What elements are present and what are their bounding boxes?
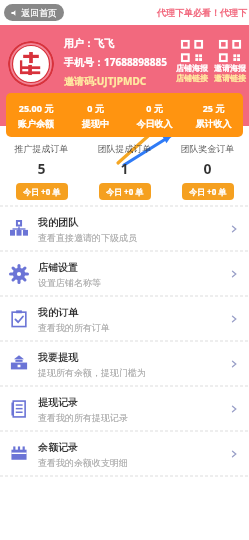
staticText: 查看我的所有订单 <box>38 322 110 333</box>
staticText: 我的订单 <box>38 306 78 319</box>
staticText: 用户：飞飞 <box>64 37 114 50</box>
staticText: 店铺设置 <box>38 261 78 274</box>
staticText: 邀请链接 <box>214 73 246 83</box>
button[interactable]: 我要提现 <box>0 342 249 386</box>
button[interactable]: 0 元 <box>66 102 125 129</box>
button[interactable]: 团队提成订单 <box>83 143 166 200</box>
staticText: 提现所有余额，提现门槛为 <box>38 367 146 378</box>
staticText: 设置店铺名称等 <box>38 277 101 288</box>
button[interactable]: 余额记录 <box>0 432 249 476</box>
staticText: 查看直接邀请的下级成员 <box>38 232 137 243</box>
staticText: 手机号：17688898885 <box>64 55 167 69</box>
staticText: 店铺海报 <box>176 63 208 73</box>
staticText: 我的团队 <box>38 216 78 229</box>
staticText: 团队提成订单 <box>83 143 166 154</box>
staticText: 邀请海报 <box>214 63 246 73</box>
button[interactable]: 店铺设置 <box>0 252 249 296</box>
staticText: 邀请码:UJTJPMDC <box>64 74 147 88</box>
staticText: 查看我的余额收支明细 <box>38 457 128 468</box>
button[interactable]: 我的订单 <box>0 297 249 341</box>
button[interactable]: 邀请海报 <box>214 41 246 83</box>
staticText: 代理下单必看！代理下 <box>157 7 247 18</box>
staticText: 累计收入 <box>184 118 243 129</box>
staticText: 我要提现 <box>38 351 78 364</box>
button[interactable]: 0 元 <box>125 102 184 129</box>
staticText: 余额记录 <box>38 441 78 454</box>
staticText: 查看我的所有提现记录 <box>38 412 128 423</box>
staticText: 团队奖金订单 <box>166 143 249 154</box>
staticText: 提现记录 <box>38 396 78 409</box>
button[interactable]: 25 元 <box>184 102 243 129</box>
staticText: 今日 +0 单 <box>23 186 61 197</box>
staticText: 今日 +0 单 <box>189 186 227 197</box>
staticText: 25.00 元 <box>6 102 66 114</box>
staticText: 0 元 <box>66 102 125 114</box>
staticText: 推广提成订单 <box>0 143 83 154</box>
staticText: 账户余额 <box>6 118 66 129</box>
button[interactable]: 我的团队 <box>0 207 249 251</box>
staticText: 今日 +0 单 <box>106 186 144 197</box>
button[interactable]: 推广提成订单 <box>0 143 83 200</box>
staticText: 25 元 <box>184 102 243 114</box>
staticText: 提现中 <box>66 118 125 129</box>
staticText: 1 <box>83 159 166 178</box>
staticText: 0 <box>166 159 249 178</box>
staticText: 0 元 <box>125 102 184 114</box>
button[interactable]: 提现记录 <box>0 387 249 431</box>
button[interactable]: 店铺海报 <box>176 41 208 83</box>
staticText: 今日收入 <box>125 118 184 129</box>
button[interactable]: 返回首页 <box>4 4 64 21</box>
button[interactable]: 修改密码 <box>64 93 104 106</box>
staticText: 店铺链接 <box>176 73 208 83</box>
button[interactable]: 团队奖金订单 <box>166 143 249 200</box>
staticText: 返回首页 <box>21 7 57 18</box>
button[interactable]: Avatar <box>8 41 54 87</box>
button[interactable]: 25.00 元 <box>6 102 66 129</box>
staticText: 5 <box>0 159 83 178</box>
